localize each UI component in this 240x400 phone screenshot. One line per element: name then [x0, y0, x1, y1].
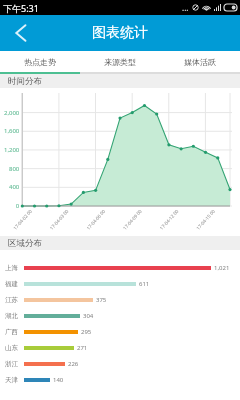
- button[interactable]: 浙江: [0, 356, 240, 372]
- staticText: 来源类型: [104, 57, 136, 67]
- button[interactable]: 天津: [0, 372, 240, 388]
- staticText: 226: [68, 360, 79, 368]
- staticText: 江苏: [5, 296, 18, 304]
- staticText: 图表统计: [92, 24, 148, 42]
- staticText: 1,021: [214, 264, 230, 272]
- staticText: 福建: [5, 280, 18, 288]
- staticText: 天津: [5, 376, 18, 384]
- staticText: 304: [83, 312, 94, 320]
- staticText: 611: [139, 280, 150, 288]
- staticText: 下午5:31: [3, 2, 39, 14]
- button[interactable]: 来源类型: [80, 51, 160, 72]
- button[interactable]: 媒体活跃: [160, 51, 240, 72]
- button[interactable]: 广西: [0, 324, 240, 340]
- button[interactable]: 福建: [0, 276, 240, 292]
- staticText: 区域分布: [8, 238, 42, 249]
- button[interactable]: 湖北: [0, 308, 240, 324]
- staticText: 媒体活跃: [184, 57, 216, 67]
- staticText: 热点走势: [24, 57, 56, 67]
- staticText: ...: [182, 2, 189, 13]
- staticText: 上海: [5, 264, 18, 272]
- staticText: 295: [81, 328, 92, 336]
- button[interactable]: 上海: [0, 260, 240, 276]
- button[interactable]: 热点走势: [0, 51, 80, 72]
- staticText: 375: [96, 296, 107, 304]
- staticText: 广西: [5, 328, 18, 336]
- staticText: 山东: [5, 344, 18, 352]
- staticText: 271: [77, 344, 88, 352]
- button[interactable]: Back: [0, 15, 40, 51]
- staticText: 浙江: [5, 360, 18, 368]
- staticText: 140: [53, 376, 64, 384]
- staticText: 湖北: [5, 312, 18, 320]
- button[interactable]: 江苏: [0, 292, 240, 308]
- button[interactable]: 山东: [0, 340, 240, 356]
- staticText: 时间分布: [8, 76, 42, 87]
